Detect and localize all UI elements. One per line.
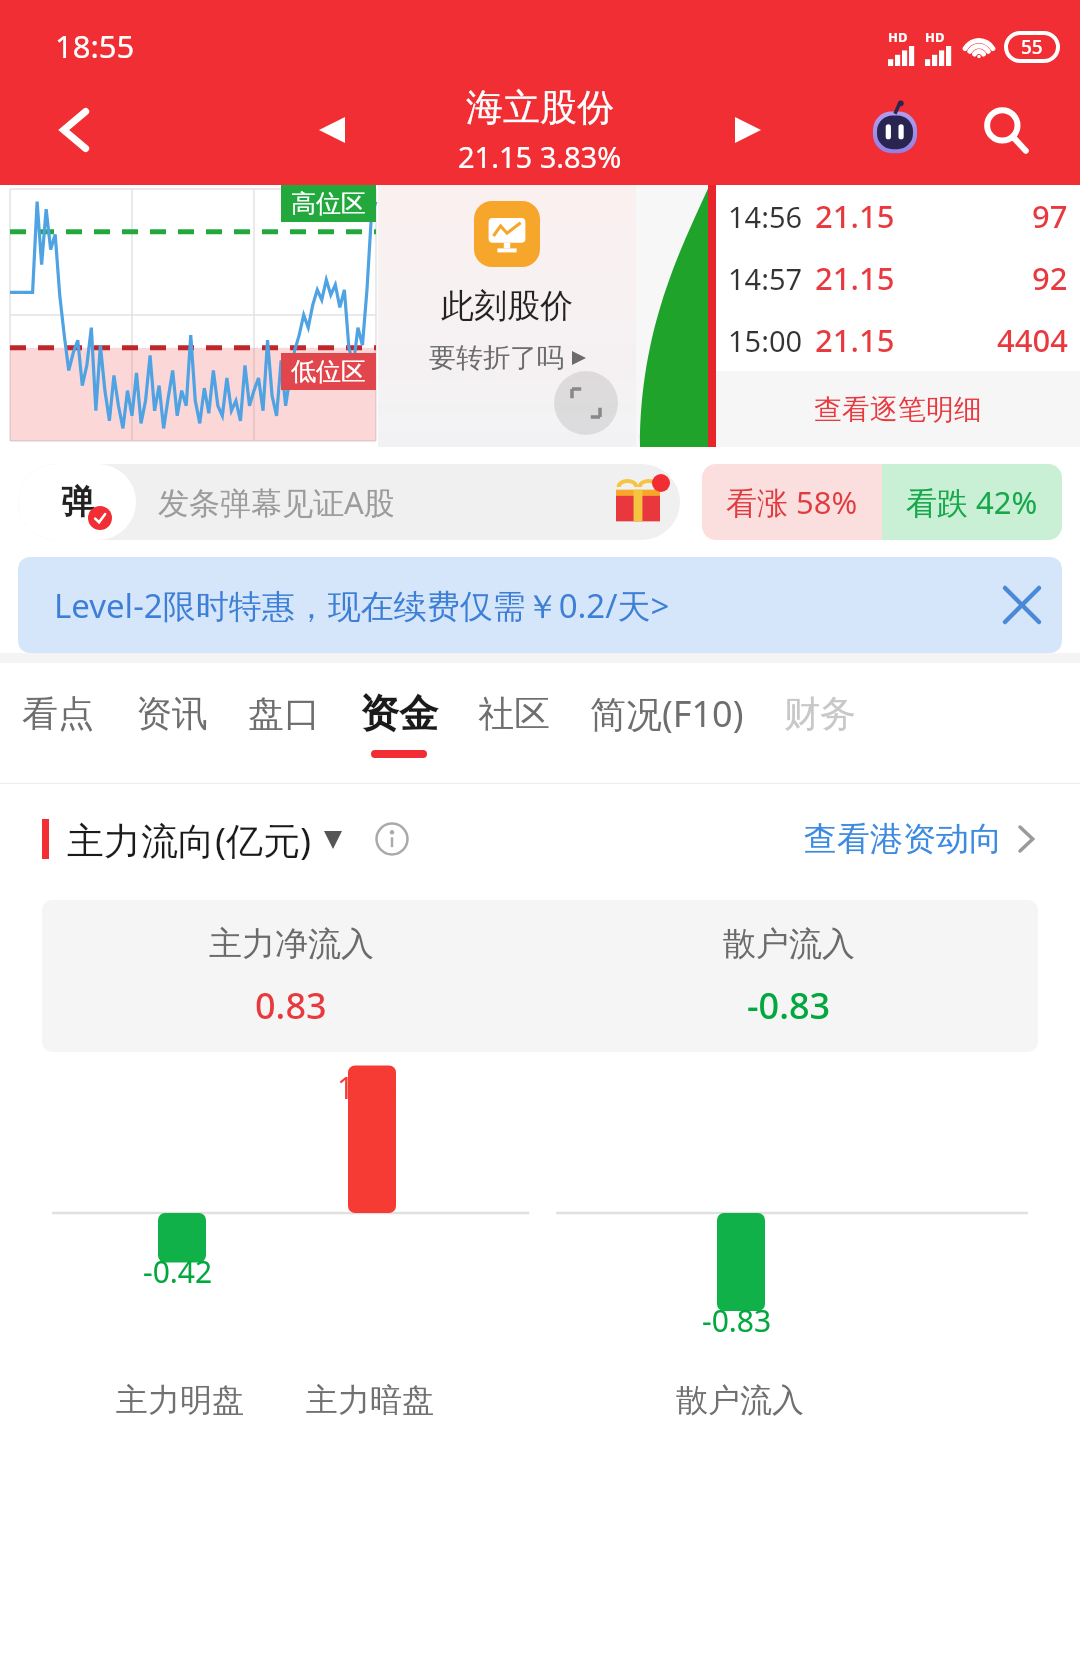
button[interactable]: Previous stock: [300, 98, 364, 162]
staticText: 主力流向(亿元): [67, 814, 312, 865]
staticText: 92: [1032, 257, 1068, 299]
staticText: 要转折了吗: [429, 341, 564, 375]
staticText: 查看港资动向: [804, 818, 1002, 860]
button[interactable]: 盘口: [228, 663, 340, 783]
staticText: 散户流入: [676, 1380, 804, 1420]
staticText: Level-2限时特惠，现在续费仅需￥0.2/天>: [54, 583, 670, 628]
button[interactable]: 看涨 58%: [702, 464, 882, 540]
staticText: 97: [1032, 195, 1068, 237]
staticText: 海立股份: [466, 84, 614, 131]
button[interactable]: 主力流向(亿元): [67, 814, 342, 865]
staticText: 资金: [360, 689, 438, 738]
staticText: 14:56: [728, 197, 803, 236]
staticText: 看点: [22, 691, 94, 736]
staticText: 散户流入: [723, 923, 855, 965]
staticText: 简况(F10): [590, 689, 744, 738]
staticText: HD: [925, 28, 945, 46]
staticText: 主力明盘: [116, 1380, 244, 1420]
staticText: 弹: [61, 481, 94, 523]
staticText: 1.25: [337, 1067, 397, 1108]
button[interactable]: 查看港资动向: [804, 818, 1038, 860]
staticText: 低位区: [291, 356, 366, 387]
button[interactable]: 财务: [764, 663, 876, 783]
button[interactable]: Fullscreen: [554, 371, 618, 435]
staticText: 15:00: [728, 321, 803, 360]
staticText: 21.15: [815, 319, 895, 361]
button[interactable]: Next stock: [716, 98, 780, 162]
staticText: 查看逐笔明细: [814, 392, 982, 427]
staticText: 21.15 3.83%: [458, 137, 622, 176]
staticText: 21.15: [815, 257, 895, 299]
staticText: 0.83: [255, 981, 327, 1030]
button[interactable]: Search: [970, 94, 1042, 166]
button[interactable]: 资金: [340, 663, 458, 783]
button[interactable]: 查看逐笔明细: [716, 371, 1080, 447]
button[interactable]: Close: [982, 565, 1062, 645]
button[interactable]: 主力净流入: [42, 900, 1038, 1052]
staticText: -0.83: [702, 1300, 772, 1341]
button[interactable]: 弹: [18, 464, 680, 540]
staticText: 高位区: [291, 188, 366, 219]
staticText: 资讯: [136, 691, 208, 736]
button[interactable]: 此刻股价: [378, 185, 636, 447]
staticText: -0.83: [747, 981, 831, 1030]
staticText: 主力暗盘: [306, 1380, 434, 1420]
staticText: -0.42: [143, 1251, 213, 1292]
staticText: 此刻股价: [441, 285, 573, 327]
staticText: 14:57: [728, 259, 803, 298]
staticText: 主力净流入: [209, 923, 374, 965]
staticText: 21.15: [815, 195, 895, 237]
button[interactable]: Back: [40, 94, 112, 166]
button[interactable]: 看点: [0, 663, 116, 783]
staticText: 盘口: [248, 691, 320, 736]
staticText: 发条弹幕见证A股: [158, 481, 395, 523]
staticText: 4404: [997, 319, 1068, 361]
button[interactable]: 社区: [458, 663, 570, 783]
staticText: 财务: [784, 691, 856, 736]
button[interactable]: AI assistant: [860, 95, 930, 165]
staticText: 看涨 58%: [726, 481, 858, 523]
staticText: 18:55: [55, 25, 135, 67]
button[interactable]: 简况(F10): [570, 663, 764, 783]
button[interactable]: 高位区: [0, 185, 378, 447]
staticText: HD: [888, 28, 908, 46]
button[interactable]: 看跌 42%: [882, 464, 1062, 540]
staticText: 社区: [478, 691, 550, 736]
button[interactable]: Level-2限时特惠，现在续费仅需￥0.2/天>: [18, 557, 1062, 653]
staticText: 看跌 42%: [906, 481, 1038, 523]
button[interactable]: Info: [372, 819, 412, 859]
button[interactable]: 资讯: [116, 663, 228, 783]
staticText: 55: [1021, 34, 1043, 60]
